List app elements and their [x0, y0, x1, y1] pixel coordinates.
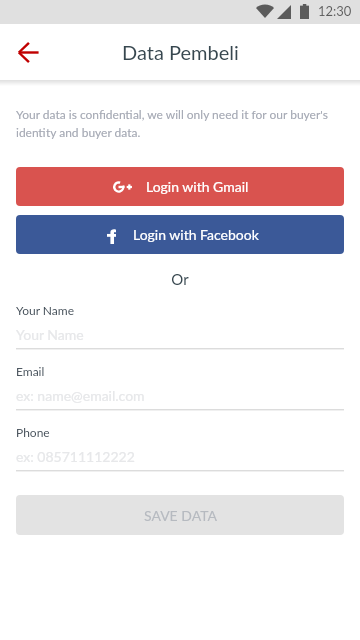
staticText: ex: name@email.com: [16, 387, 145, 404]
button[interactable]: Login with Gmail: [16, 167, 344, 206]
button[interactable]: Back: [8, 32, 48, 72]
staticText: Your Name: [16, 326, 84, 343]
button[interactable]: Login with Facebook: [16, 215, 344, 254]
staticText: Login with Facebook: [133, 226, 259, 243]
staticText: Or: [0, 270, 360, 288]
button[interactable]: SAVE DATA: [16, 495, 344, 535]
staticText: Phone: [16, 425, 50, 439]
staticText: SAVE DATA: [144, 507, 217, 524]
staticText: Your data is confidential, we will only …: [16, 107, 344, 139]
staticText: Email: [16, 364, 45, 378]
staticText: Your Name: [16, 303, 75, 317]
staticText: Data Pembeli: [122, 40, 239, 64]
staticText: ex: 085711112222: [16, 448, 135, 465]
staticText: 12:30: [318, 3, 352, 19]
staticText: Login with Gmail: [146, 178, 249, 195]
